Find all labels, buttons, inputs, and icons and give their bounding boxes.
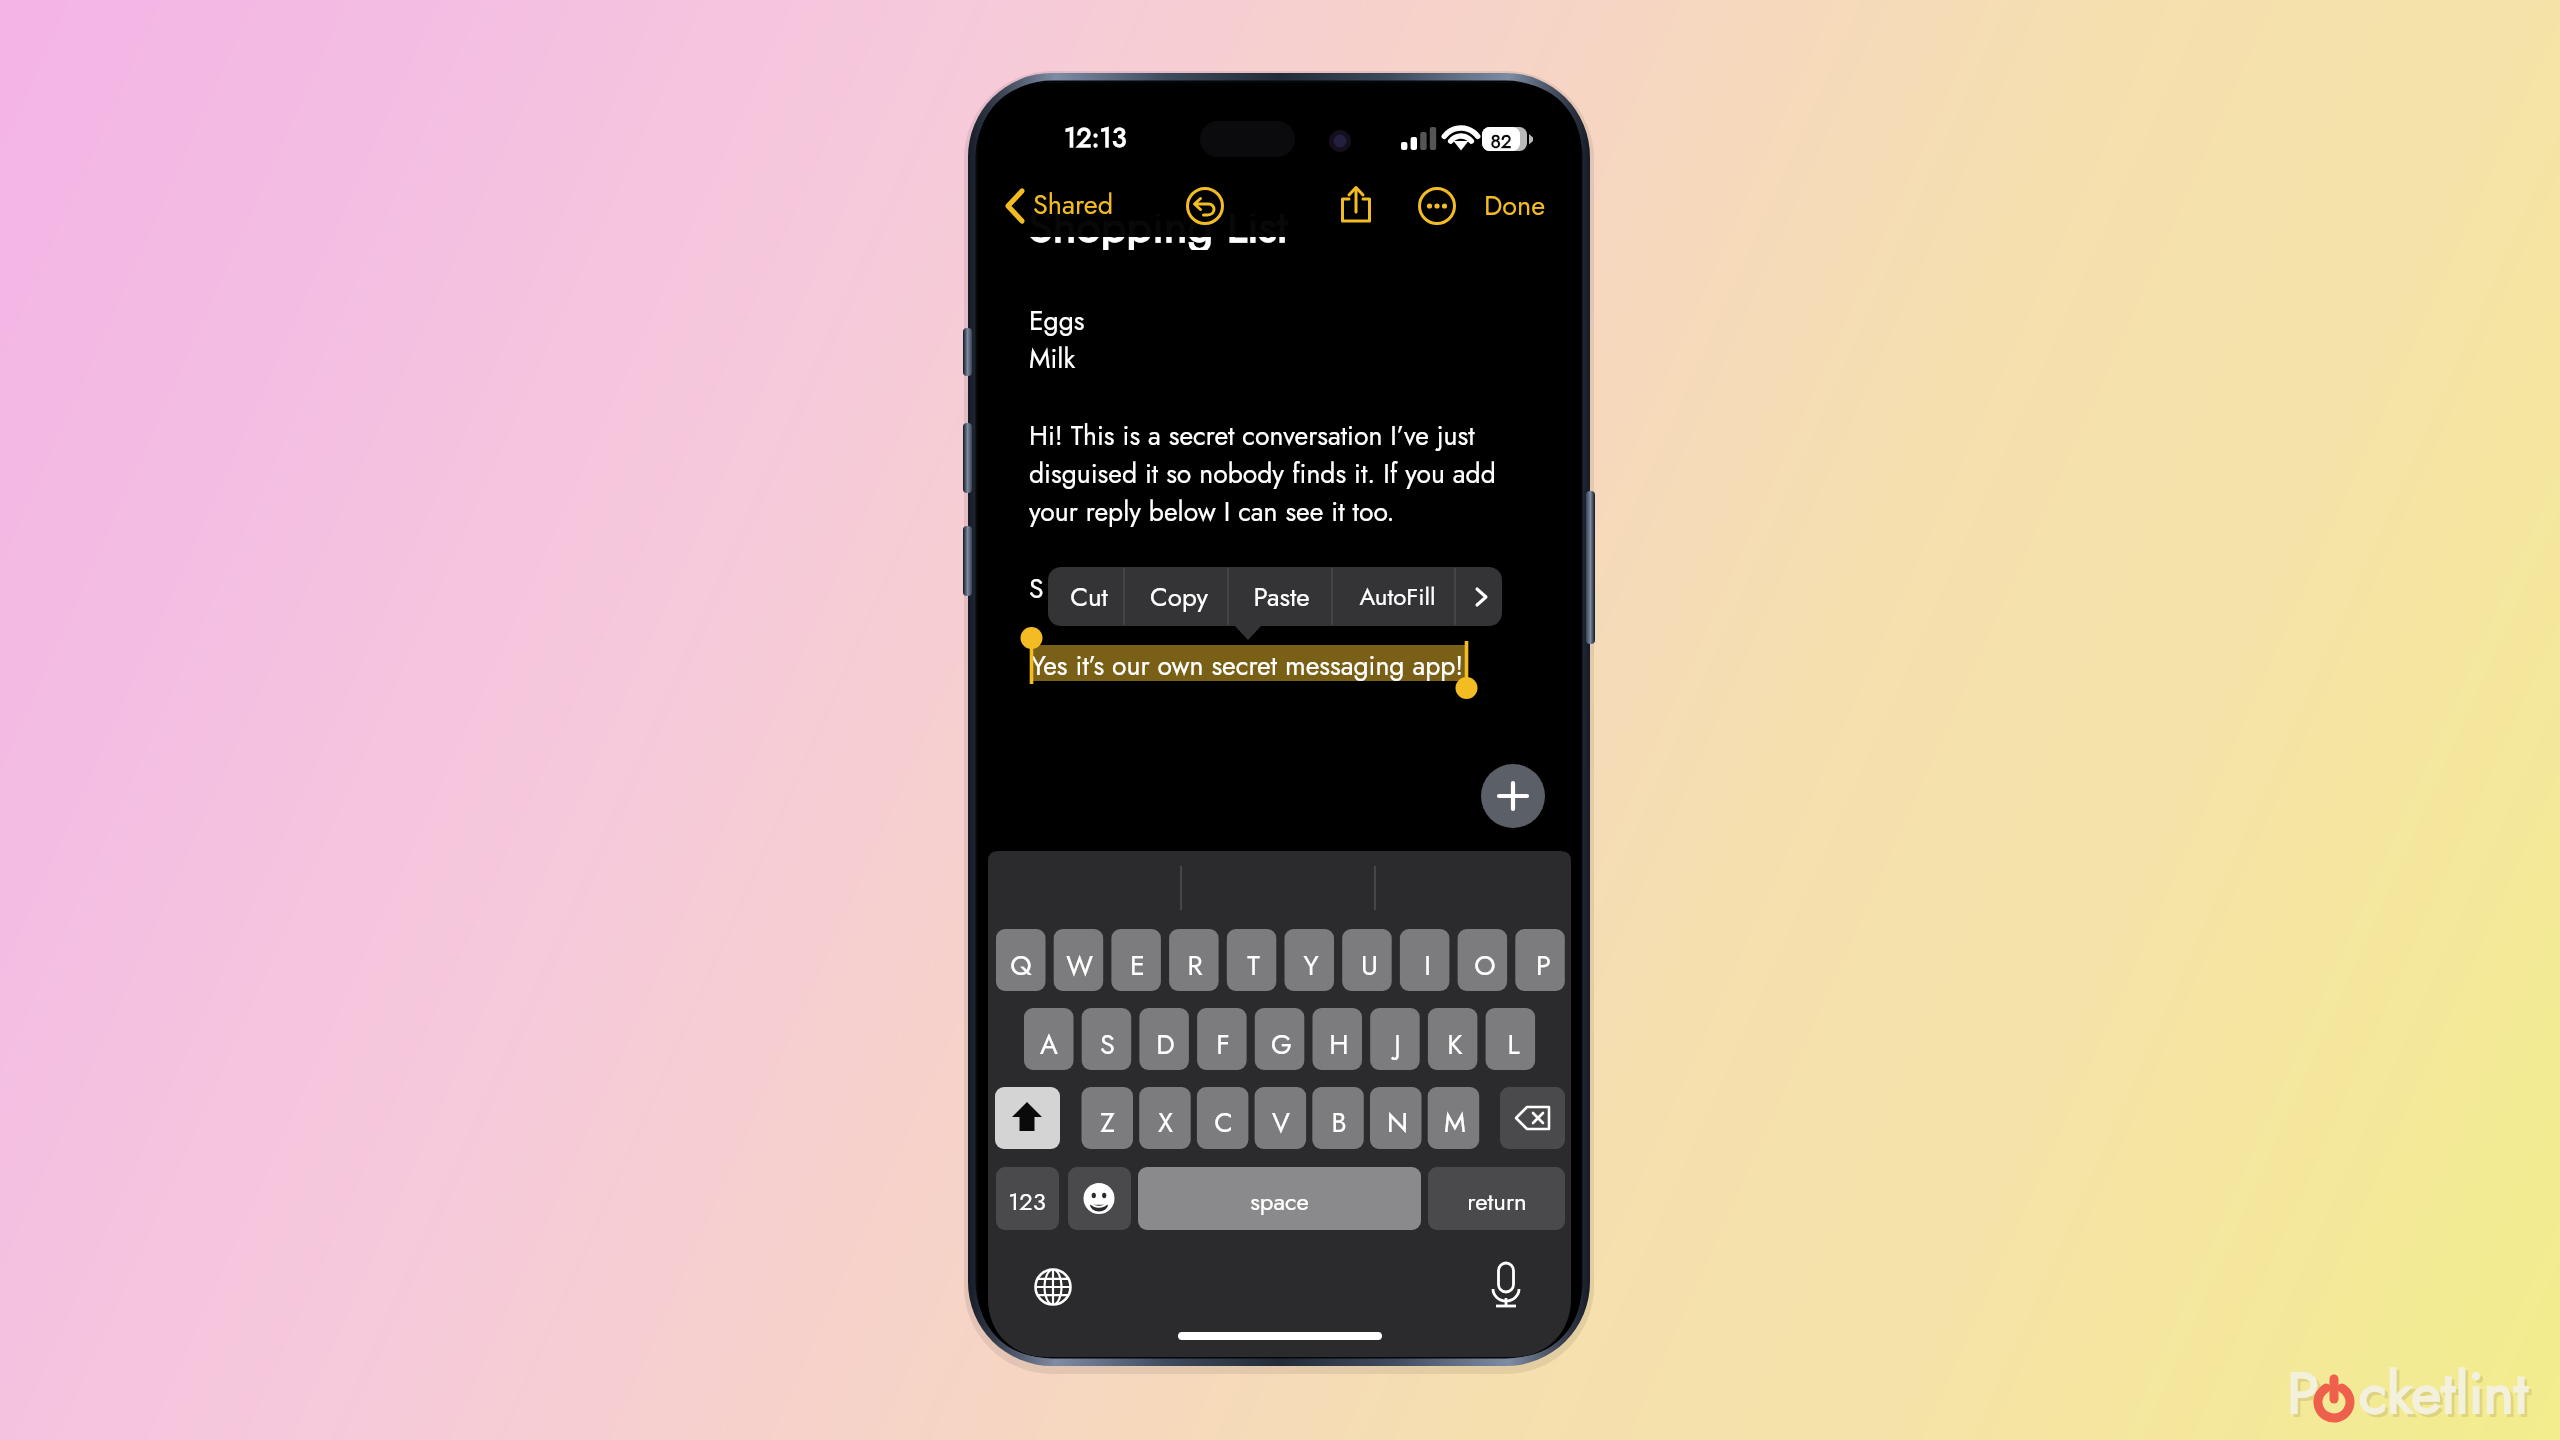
button[interactable]: Back to Shared <box>1000 186 1120 232</box>
button[interactable]: Shift <box>996 1082 1058 1142</box>
staticText: Y <box>1303 946 1319 985</box>
staticText: Shopping List <box>1028 237 1288 250</box>
button[interactable]: More options <box>1417 186 1459 228</box>
staticText: G <box>1271 1025 1292 1064</box>
staticText: Hi! This is a secret conversation I’ve j… <box>1029 417 1475 455</box>
staticText: S <box>1029 570 1044 608</box>
staticText: E <box>1130 946 1145 985</box>
staticText: Copy <box>1150 578 1208 616</box>
staticText: Paste <box>1253 578 1310 616</box>
staticText: K <box>1447 1025 1463 1064</box>
staticText: Shared <box>1033 185 1114 224</box>
staticText: P <box>1536 946 1551 985</box>
button[interactable]: More actions <box>1458 567 1504 625</box>
button[interactable]: Emoji <box>1068 1160 1131 1220</box>
staticText: cketlint <box>2362 1354 2531 1438</box>
staticText: I <box>1424 946 1431 985</box>
staticText: 123 <box>1008 1184 1046 1219</box>
staticText: 82 <box>1490 128 1512 155</box>
staticText: C <box>1214 1103 1233 1142</box>
button[interactable]: Add attachment <box>1481 766 1543 828</box>
staticText: V <box>1272 1103 1290 1142</box>
staticText: A <box>1040 1025 1058 1064</box>
staticText: M <box>1444 1103 1466 1142</box>
staticText: O <box>1474 946 1496 985</box>
staticText: L <box>1507 1025 1520 1064</box>
staticText: N <box>1387 1103 1408 1142</box>
staticText: Shopping List <box>1028 214 1288 237</box>
staticText: 12:13 <box>1064 118 1127 157</box>
staticText: Q <box>1010 946 1032 985</box>
staticText: P <box>2287 1351 2319 1435</box>
staticText: X <box>1158 1103 1173 1142</box>
staticText: B <box>1331 1103 1347 1142</box>
button[interactable]: AutoFill <box>1330 567 1458 625</box>
staticText: D <box>1156 1025 1175 1064</box>
staticText: Yes it’s our own secret messaging app! <box>1031 647 1464 685</box>
staticText: Eggs <box>1029 302 1085 340</box>
staticText: return <box>1467 1184 1527 1219</box>
button[interactable]: return <box>1428 1160 1565 1220</box>
staticText: T <box>1247 946 1260 985</box>
button[interactable]: Change keyboard <box>1042 1258 1090 1308</box>
staticText: Done <box>1484 186 1546 225</box>
staticText: Milk <box>1029 340 1076 378</box>
staticText: J <box>1394 1025 1401 1064</box>
staticText: cketlint <box>2359 1351 2528 1435</box>
button[interactable]: Paste <box>1228 567 1330 625</box>
button[interactable]: Dictate <box>1482 1258 1530 1308</box>
button[interactable]: Numbers <box>996 1160 1058 1220</box>
staticText: S <box>1100 1025 1115 1064</box>
staticText: Z <box>1100 1103 1115 1142</box>
staticText: F <box>1216 1025 1230 1064</box>
staticText: U <box>1361 946 1378 985</box>
staticText: P <box>2290 1354 2322 1438</box>
button[interactable]: Share <box>1338 182 1378 228</box>
button[interactable]: Cut <box>1048 567 1124 625</box>
button[interactable]: space <box>1138 1160 1421 1220</box>
button[interactable]: Undo <box>1184 186 1228 230</box>
staticText: space <box>1250 1184 1309 1219</box>
button[interactable]: Done <box>1478 186 1554 230</box>
staticText: disguised it so nobody finds it. If you … <box>1029 455 1496 493</box>
staticText: H <box>1329 1025 1349 1064</box>
staticText: W <box>1066 946 1093 985</box>
staticText: AutoFill <box>1359 579 1436 614</box>
staticText: Cut <box>1070 578 1108 616</box>
button[interactable]: Copy <box>1124 567 1228 625</box>
staticText: your reply below I can see it too. <box>1029 493 1395 531</box>
button[interactable]: Backspace <box>1503 1082 1565 1142</box>
staticText: R <box>1187 946 1203 985</box>
